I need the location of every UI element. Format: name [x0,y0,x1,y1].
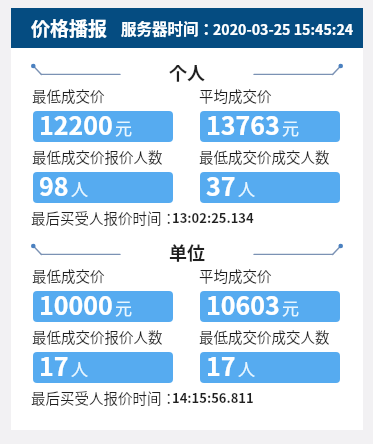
staticText: 13:02:25.134 [172,208,254,227]
button[interactable]: 37 [200,172,340,203]
staticText: 人 [71,356,88,381]
staticText: 最低成交价成交人数 [199,146,330,167]
button[interactable]: 12200 [33,111,173,142]
staticText: 人 [238,176,255,201]
button[interactable]: 10000 [33,291,173,322]
staticText: 服务器时间： [121,17,215,39]
staticText: 最低成交价 [32,265,105,286]
staticText: 12200 [39,111,113,137]
staticText: 元 [282,295,299,320]
staticText: 单位 [169,239,205,265]
staticText: 价格播报 [31,14,108,42]
staticText: 10603 [206,291,280,317]
staticText: 98 [39,172,69,198]
staticText: 17 [39,352,69,378]
staticText: 平均成交价 [199,265,272,286]
staticText: 人 [238,356,255,381]
staticText: 最低成交价报价人数 [32,146,163,167]
staticText: 10000 [39,291,113,317]
button[interactable]: 17 [200,352,340,383]
staticText: 平均成交价 [199,85,272,106]
staticText: 14:15:56.811 [172,388,254,407]
staticText: 最后买受人报价时间： [31,207,176,228]
staticText: 17 [206,352,236,378]
staticText: 最低成交价 [32,85,105,106]
button[interactable]: 98 [33,172,173,203]
staticText: 37 [206,172,236,198]
staticText: 个人 [169,59,205,85]
button[interactable]: 10603 [200,291,340,322]
button[interactable]: 13763 [200,111,340,142]
button[interactable]: 价格播报 [11,8,363,48]
staticText: 最后买受人报价时间： [31,387,176,408]
staticText: 最低成交价成交人数 [199,326,330,347]
staticText: 元 [115,295,132,320]
staticText: 最低成交价报价人数 [32,326,163,347]
button[interactable]: 17 [33,352,173,383]
staticText: 元 [115,115,132,140]
staticText: 13763 [206,111,280,137]
staticText: 2020-03-25 15:45:24 [213,19,354,40]
staticText: 元 [282,115,299,140]
staticText: 人 [71,176,88,201]
